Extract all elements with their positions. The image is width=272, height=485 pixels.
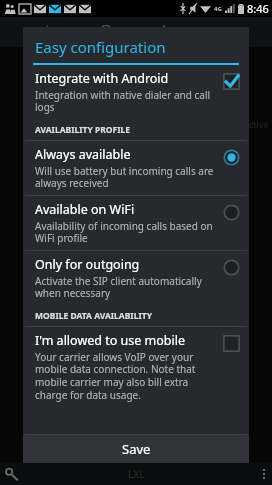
staticText: Available on WiFi (35, 201, 135, 218)
staticText: Will use battery but incoming calls are … (35, 164, 216, 190)
staticText: Activate the SIP client automatically wh… (35, 274, 216, 300)
button[interactable]: Checked (222, 72, 241, 91)
staticText: Integration with native dialer and call … (35, 88, 216, 114)
button[interactable]: Not selected (222, 203, 241, 222)
button[interactable]: Unchecked (222, 334, 241, 353)
staticText: Availability of incoming calls based on … (35, 219, 216, 245)
staticText: Your carrier allows VoIP over your mobil… (35, 350, 216, 402)
staticText: LXL (128, 467, 145, 481)
button[interactable]: Save (23, 435, 249, 463)
staticText: AVAILABILITY PROFILE (35, 124, 131, 136)
staticText: Easy configuration (35, 37, 166, 57)
other: Search (5, 467, 21, 481)
staticText: 8:46 (247, 1, 269, 16)
button[interactable]: More options (263, 469, 265, 479)
staticText: Always available (35, 146, 131, 163)
staticText: I'm allowed to use mobile (35, 332, 185, 349)
button[interactable]: Available on WiFi (23, 196, 249, 250)
button[interactable]: Always available (23, 141, 249, 195)
button[interactable]: I'm allowed to use mobile (23, 327, 249, 407)
staticText: Only for outgoing (35, 256, 140, 273)
staticText: 4G (214, 5, 222, 13)
staticText: Integrate with Android (35, 70, 169, 87)
button[interactable]: Integrate with Android (23, 65, 249, 119)
staticText: Save (122, 440, 151, 458)
button[interactable]: Not selected (222, 258, 241, 277)
button[interactable]: Selected (222, 148, 241, 167)
button[interactable]: Only for outgoing (23, 251, 249, 305)
staticText: ctive (249, 118, 269, 130)
staticText: MOBILE DATA AVAILABILITY (35, 310, 152, 322)
